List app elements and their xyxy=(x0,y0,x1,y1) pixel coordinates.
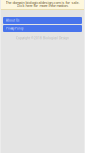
button[interactable]: Privacy Policy xyxy=(3,25,82,32)
button[interactable]: The domain biologicaldesign.com is for s… xyxy=(0,0,85,10)
button[interactable]: About Us xyxy=(3,17,82,24)
staticText: The domain biologicaldesign.com is for s… xyxy=(5,0,79,5)
staticText: Copyright © 2018 Biological Design xyxy=(16,36,69,40)
staticText: About Us xyxy=(6,19,19,22)
staticText: Click here for more information. xyxy=(16,3,68,8)
staticText: Privacy Policy xyxy=(6,27,23,30)
